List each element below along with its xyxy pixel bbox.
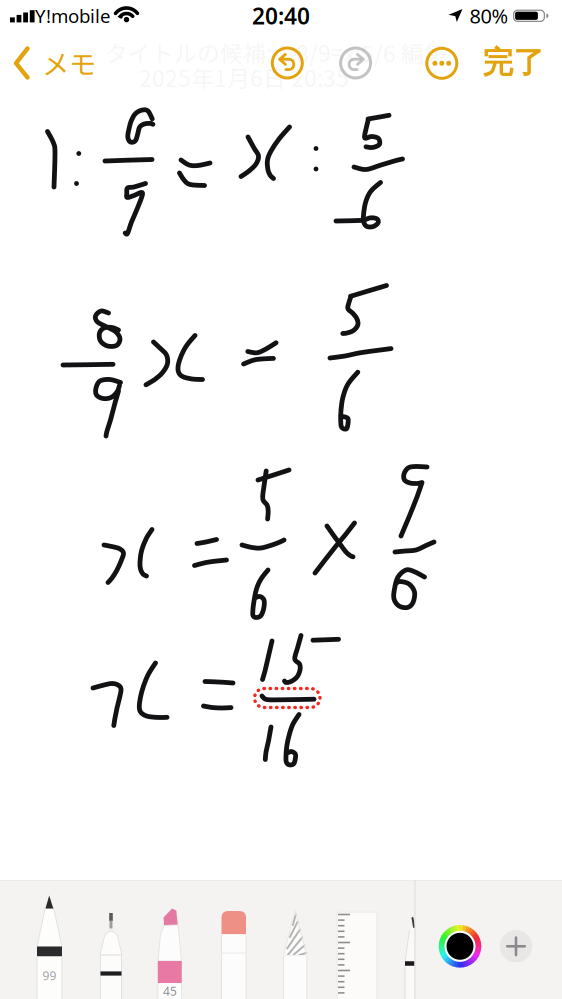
staticText: 2025年1月6日 20:35 — [139, 61, 349, 93]
button[interactable]: 完了 — [478, 40, 548, 84]
button[interactable]: Pen — [33, 880, 66, 999]
staticText: 80% — [469, 2, 508, 29]
button[interactable]: Ruler — [334, 880, 379, 999]
button[interactable]: Eraser — [219, 880, 248, 999]
staticText: メモ — [42, 43, 96, 82]
staticText: 99 — [42, 967, 56, 983]
button[interactable]: Color picker — [438, 924, 482, 968]
button[interactable]: Undo — [265, 41, 309, 85]
button[interactable]: Lasso — [281, 880, 309, 999]
staticText: タイトルの候補: 1:8/9=x:5/6 編集 — [105, 36, 447, 68]
staticText: 完了 — [482, 43, 544, 82]
button[interactable]: メモ — [8, 41, 98, 85]
staticText: Y!mobile — [35, 3, 111, 28]
button[interactable]: Highlighter — [157, 880, 187, 999]
button[interactable]: Add tool — [500, 930, 532, 962]
button[interactable]: Marker — [96, 880, 125, 999]
staticText: 20:40 — [252, 1, 310, 31]
button[interactable]: Redo — [334, 41, 378, 85]
staticText: 45 — [163, 983, 177, 999]
button[interactable]: More — [420, 41, 464, 85]
